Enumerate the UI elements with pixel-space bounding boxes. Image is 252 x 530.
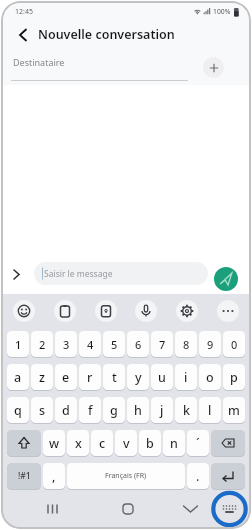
button[interactable]: Destinataire <box>1 47 251 85</box>
button[interactable]: b <box>139 430 161 456</box>
button[interactable] <box>54 300 76 322</box>
button[interactable]: s <box>31 397 53 423</box>
button[interactable] <box>188 489 251 529</box>
button[interactable]: n <box>163 430 185 456</box>
button[interactable]: 0 <box>223 331 245 357</box>
button[interactable]: f <box>79 397 101 423</box>
staticText: 2 <box>39 337 46 352</box>
staticText: f <box>88 402 93 419</box>
staticText: u <box>158 369 166 386</box>
staticText: 7 <box>159 337 166 352</box>
button[interactable]: 3 <box>55 331 77 357</box>
button[interactable]: Saisir le message <box>34 262 208 285</box>
button[interactable]: 4 <box>79 331 101 357</box>
button[interactable] <box>211 463 245 489</box>
staticText: g <box>110 402 118 419</box>
staticText: , <box>52 468 56 485</box>
button[interactable]: v <box>115 430 137 456</box>
button[interactable]: e <box>55 364 77 390</box>
button[interactable] <box>135 300 157 322</box>
button[interactable] <box>95 300 117 322</box>
staticText: d <box>62 402 70 419</box>
staticText: 0 <box>231 337 238 352</box>
button[interactable]: Français (FR) <box>67 463 185 489</box>
staticText: . <box>196 468 200 485</box>
staticText: i <box>184 369 188 386</box>
button[interactable] <box>217 300 239 322</box>
button[interactable]: z <box>31 364 53 390</box>
staticText: c <box>99 435 106 452</box>
staticText: 9 <box>207 337 214 352</box>
staticText: ´ <box>196 435 200 452</box>
staticText: k <box>183 402 190 419</box>
button[interactable]: a <box>7 364 29 390</box>
button[interactable]: q <box>7 397 29 423</box>
button[interactable]: 7 <box>151 331 173 357</box>
button[interactable]: 2 <box>31 331 53 357</box>
button[interactable]: d <box>55 397 77 423</box>
staticText: o <box>206 369 214 386</box>
staticText: 100% <box>213 7 231 16</box>
button[interactable]: !#1 <box>7 463 41 489</box>
staticText: n <box>170 435 178 452</box>
button[interactable]: o <box>199 364 221 390</box>
staticText: j <box>160 402 164 419</box>
staticText: w <box>49 435 60 452</box>
button[interactable] <box>63 489 125 529</box>
staticText: 4 <box>87 337 94 352</box>
staticText: Destinataire <box>13 56 65 68</box>
button[interactable] <box>203 57 224 78</box>
button[interactable]: h <box>127 397 149 423</box>
button[interactable]: c <box>91 430 113 456</box>
staticText: Nouvelle conversation <box>38 26 175 43</box>
button[interactable]: k <box>175 397 197 423</box>
staticText: l <box>208 402 212 419</box>
button[interactable]: ´ <box>187 430 209 456</box>
staticText: y <box>135 369 142 386</box>
staticText: Saisir le message <box>44 268 113 280</box>
button[interactable] <box>211 430 245 456</box>
button[interactable]: i <box>175 364 197 390</box>
button[interactable] <box>7 430 41 456</box>
staticText: 8 <box>183 337 190 352</box>
staticText: p <box>230 369 238 386</box>
staticText: h <box>134 402 142 419</box>
staticText: s <box>39 402 46 419</box>
staticText: b <box>146 435 154 452</box>
button[interactable]: m <box>223 397 245 423</box>
button[interactable]: x <box>67 430 89 456</box>
button[interactable]: , <box>43 463 65 489</box>
button[interactable]: r <box>79 364 101 390</box>
staticText: 6 <box>135 337 142 352</box>
button[interactable] <box>1 254 31 294</box>
button[interactable]: y <box>127 364 149 390</box>
button[interactable] <box>13 300 35 322</box>
button[interactable]: w <box>43 430 65 456</box>
button[interactable]: 1 <box>7 331 29 357</box>
staticText: 3 <box>63 337 70 352</box>
button[interactable]: u <box>151 364 173 390</box>
button[interactable]: t <box>103 364 125 390</box>
button[interactable] <box>13 25 33 45</box>
button[interactable]: l <box>199 397 221 423</box>
button[interactable]: p <box>223 364 245 390</box>
staticText: q <box>14 402 22 419</box>
button[interactable] <box>1 489 63 529</box>
staticText: r <box>87 369 93 386</box>
staticText: 1 <box>15 337 22 352</box>
button[interactable] <box>176 300 198 322</box>
staticText: t <box>112 369 117 386</box>
button[interactable]: j <box>151 397 173 423</box>
button[interactable]: . <box>187 463 209 489</box>
staticText: x <box>75 435 82 452</box>
button[interactable] <box>125 489 188 529</box>
staticText: Français (FR) <box>105 471 147 481</box>
staticText: m <box>228 402 240 419</box>
button[interactable]: g <box>103 397 125 423</box>
button[interactable]: 5 <box>103 331 125 357</box>
button[interactable]: 6 <box>127 331 149 357</box>
button[interactable]: 9 <box>199 331 221 357</box>
button[interactable] <box>214 267 238 291</box>
button[interactable]: 8 <box>175 331 197 357</box>
staticText: e <box>62 369 70 386</box>
